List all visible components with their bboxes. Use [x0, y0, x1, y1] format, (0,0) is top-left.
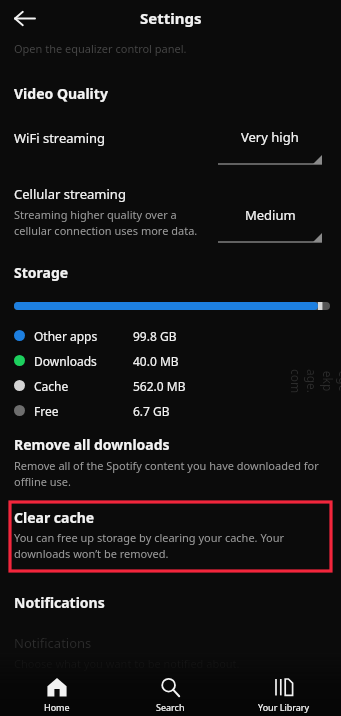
staticText: Cache	[34, 378, 133, 394]
button[interactable]: Very high	[218, 128, 322, 165]
staticText: WiFi streaming	[14, 129, 218, 147]
staticText: Other apps	[34, 328, 133, 344]
staticText: Medium	[245, 206, 296, 224]
staticText: You can free up storage by clearing your…	[14, 530, 327, 561]
button[interactable]: Cache	[14, 373, 327, 398]
staticText: Free	[34, 403, 133, 419]
staticText: Home	[44, 701, 70, 713]
button[interactable]: Remove all downloads	[0, 435, 341, 489]
staticText: ©thegeekpage.com	[288, 368, 341, 394]
staticText: 562.0 MB	[133, 378, 186, 394]
button[interactable]: Medium	[218, 206, 322, 243]
button[interactable]: Other apps	[14, 323, 327, 348]
button[interactable]: Home	[0, 650, 113, 716]
button[interactable]: Clear cache	[10, 502, 331, 571]
staticText: Search	[156, 701, 185, 713]
staticText: 40.0 MB	[133, 353, 179, 369]
staticText: Settings	[140, 8, 202, 28]
staticText: Notifications	[14, 634, 92, 652]
button[interactable]: Search	[113, 650, 227, 716]
staticText: 6.7 GB	[133, 403, 170, 419]
staticText: Remove all of the Spotify content you ha…	[14, 458, 319, 489]
staticText: Storage	[14, 263, 69, 282]
button[interactable]: Downloads	[14, 348, 327, 373]
staticText: Your Library	[258, 701, 310, 713]
staticText: Very high	[241, 128, 299, 146]
staticText: Open the equalizer control panel.	[14, 41, 187, 56]
staticText: Notifications	[14, 593, 105, 612]
button[interactable]: Free	[14, 398, 327, 423]
staticText: Cellular streaming	[14, 185, 126, 203]
staticText: Streaming higher quality over a cellular…	[14, 207, 208, 238]
staticText: Clear cache	[14, 508, 95, 527]
staticText: Downloads	[34, 353, 133, 369]
staticText: 99.8 GB	[133, 328, 177, 344]
button[interactable]: Back	[6, 0, 42, 36]
button[interactable]: Your Library	[227, 650, 341, 716]
staticText: Remove all downloads	[14, 435, 170, 454]
staticText: Video Quality	[14, 84, 108, 103]
